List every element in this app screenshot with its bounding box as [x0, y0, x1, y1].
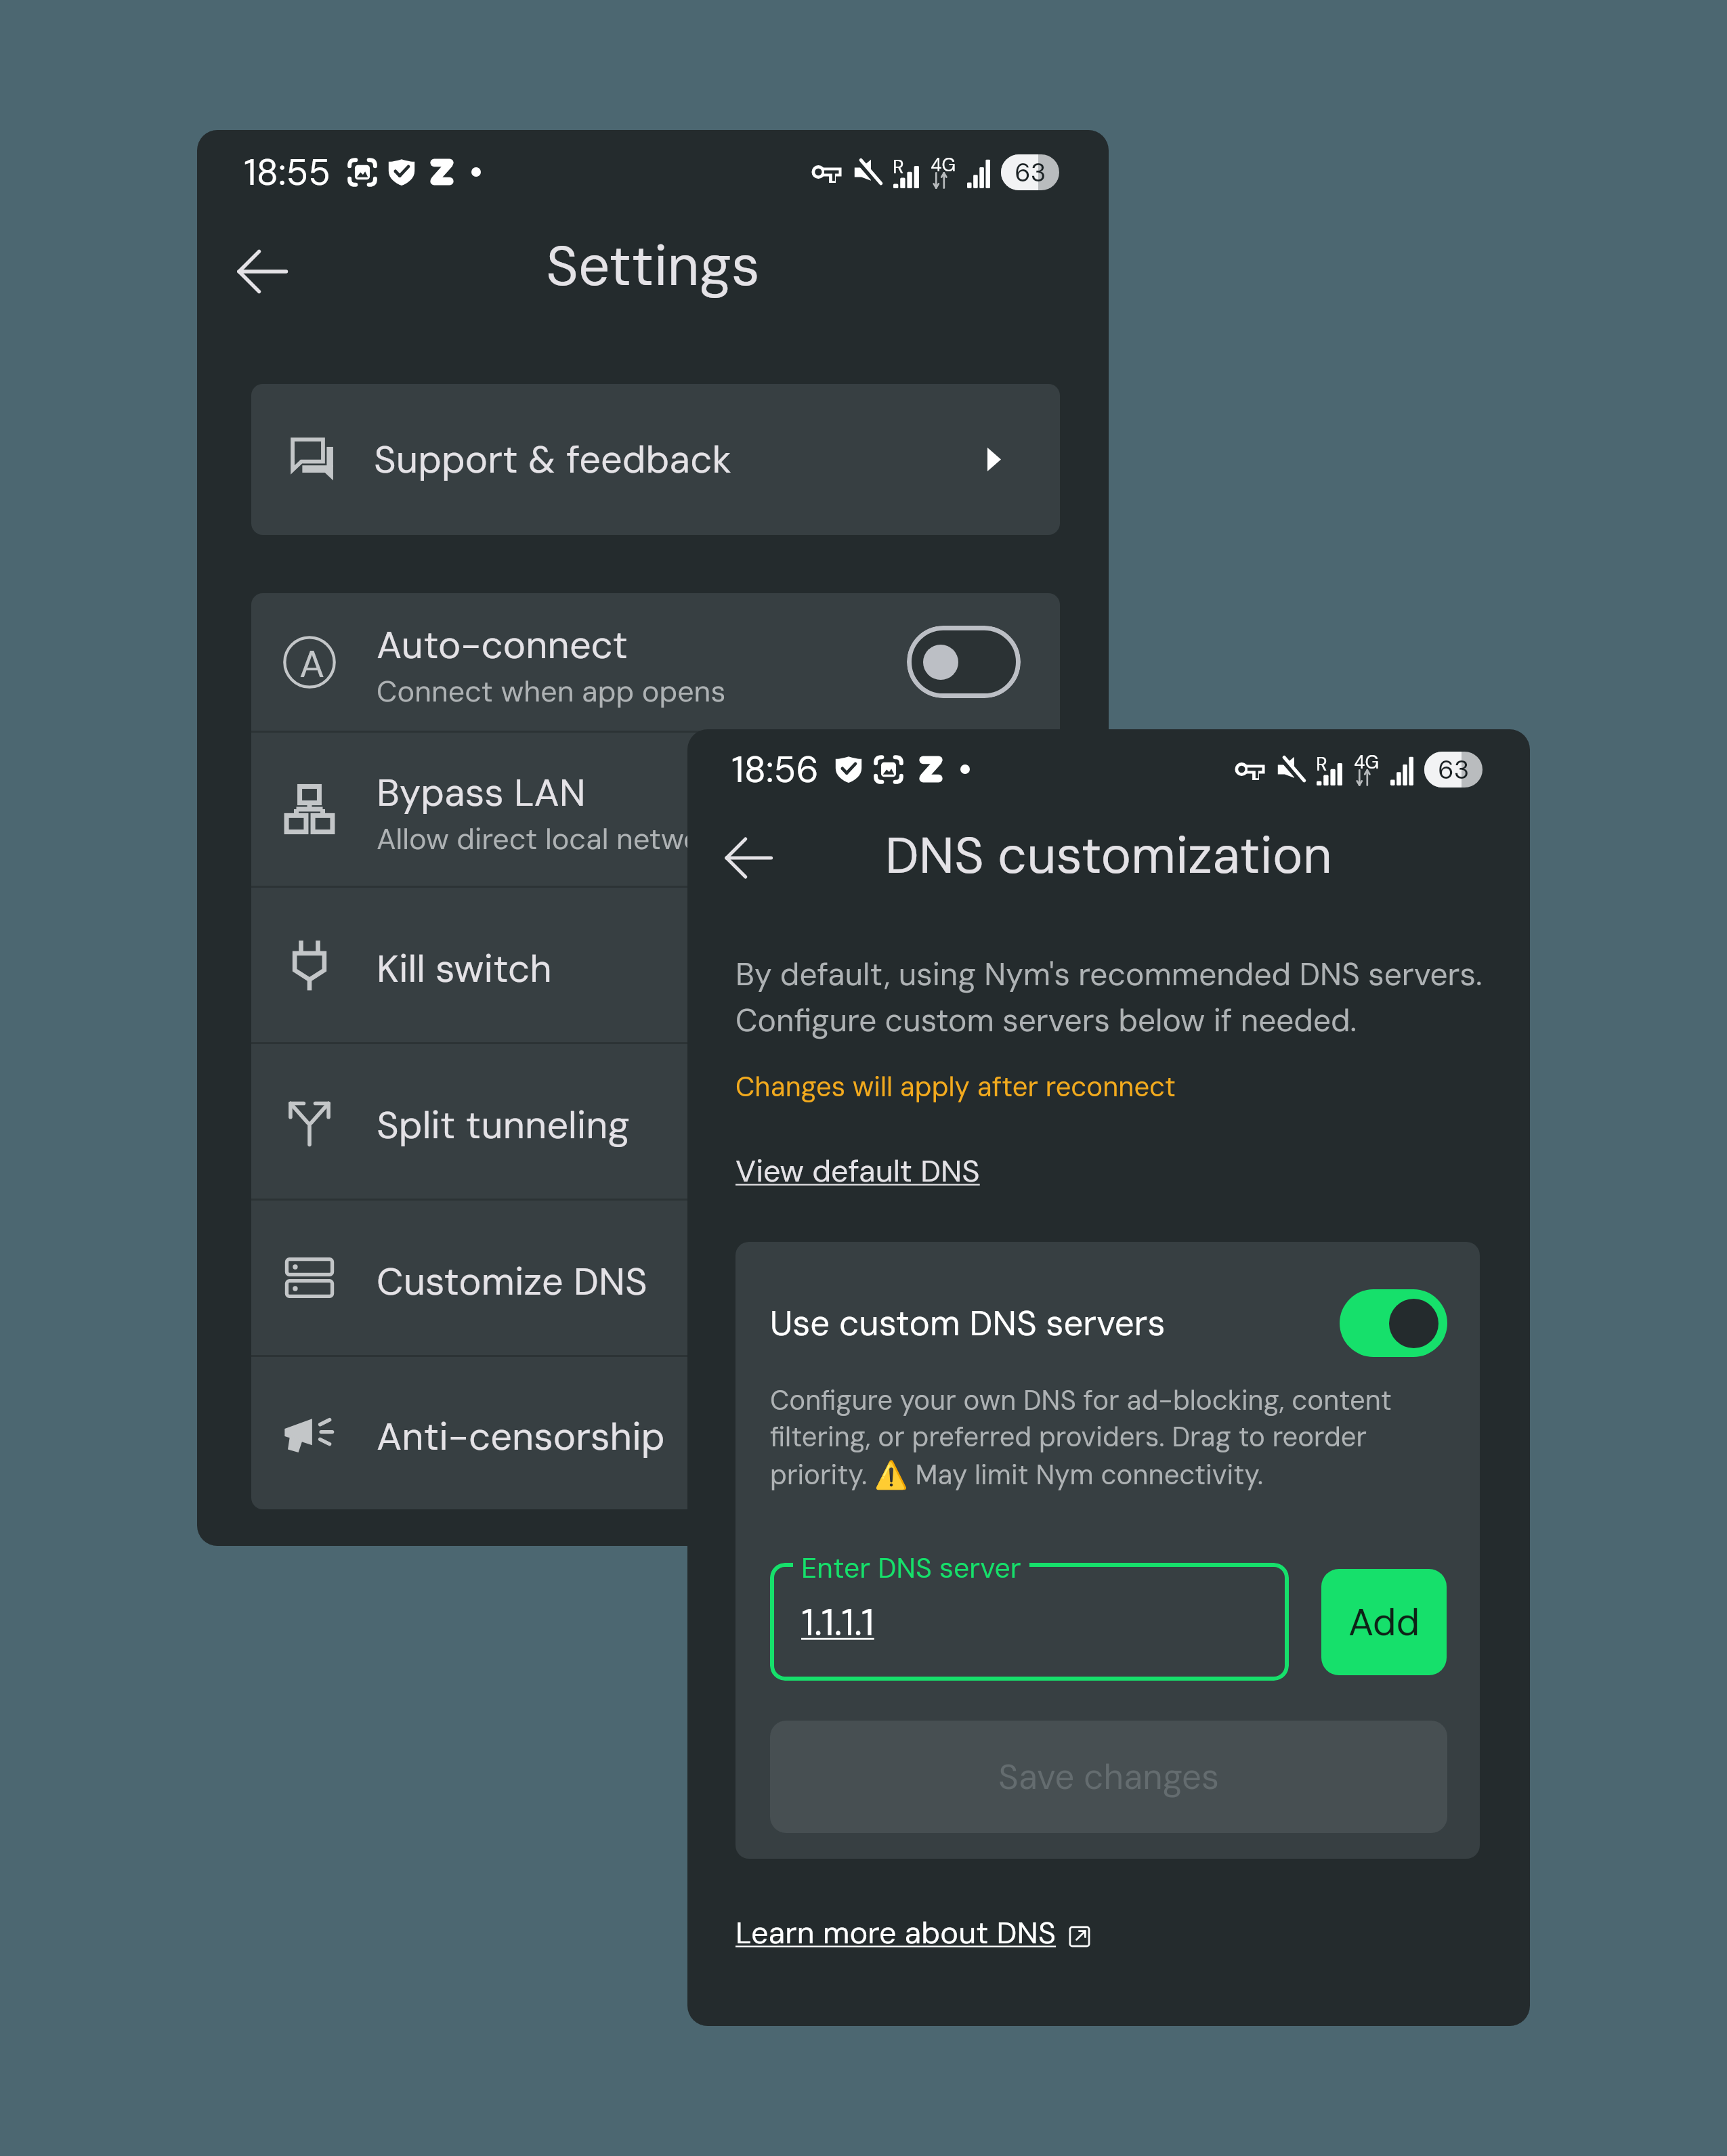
button[interactable]: Back: [706, 816, 790, 900]
button[interactable]: [907, 626, 1021, 698]
button[interactable]: Learn more about DNS: [735, 1913, 1090, 1953]
staticText: DNS customization: [885, 823, 1333, 889]
staticText: Split tunneling: [377, 1100, 630, 1150]
staticText: Learn more about DNS: [735, 1913, 1057, 1953]
staticText: 18:56: [731, 746, 819, 793]
staticText: Changes will apply after reconnect: [735, 1069, 1176, 1104]
staticText: 1.1.1.1: [801, 1597, 874, 1647]
staticText: Settings: [546, 230, 760, 303]
staticText: A: [299, 639, 325, 689]
staticText: Add: [1348, 1597, 1420, 1647]
button[interactable]: [770, 1563, 1289, 1681]
button[interactable]: Use custom DNS servers: [770, 1289, 1447, 1357]
button[interactable]: Support & feedback: [251, 384, 1060, 535]
staticText: Support & feedback: [374, 435, 731, 484]
staticText: Kill switch: [377, 944, 552, 993]
staticText: Customize DNS: [377, 1257, 647, 1306]
staticText: 18:55: [244, 148, 331, 196]
button[interactable]: Add: [1321, 1569, 1447, 1675]
button[interactable]: Kill switch: [251, 888, 1060, 1042]
button[interactable]: View default DNS: [735, 1151, 980, 1191]
button[interactable]: Customize DNS: [251, 1201, 1060, 1355]
staticText: Enter DNS server: [801, 1550, 1021, 1586]
staticText: Connect when app opens: [377, 672, 726, 710]
staticText: 4G+: [1354, 750, 1378, 774]
staticText: Auto-connect: [377, 620, 628, 670]
button[interactable]: Anti-censorship: [251, 1357, 1060, 1509]
button[interactable]: A: [251, 593, 1060, 731]
staticText: Bypass LAN: [377, 768, 586, 817]
button[interactable]: Back: [219, 228, 305, 315]
staticText: Configure your own DNS for ad-blocking, …: [770, 1383, 1447, 1492]
staticText: R: [1316, 752, 1327, 776]
staticText: Use custom DNS servers: [770, 1301, 1340, 1345]
button[interactable]: Bypass LAN: [251, 733, 1060, 886]
staticText: Anti-censorship: [377, 1412, 665, 1461]
staticText: By default, using Nym's recommended DNS …: [735, 954, 1483, 1041]
button[interactable]: [1340, 1289, 1447, 1357]
staticText: 4G: [931, 153, 955, 177]
staticText: Save changes: [998, 1754, 1219, 1799]
button[interactable]: Split tunneling: [251, 1044, 1060, 1199]
staticText: Allow direct local network access: [377, 820, 831, 858]
staticText: 63: [1438, 753, 1470, 786]
staticText: 63: [1015, 156, 1046, 189]
button[interactable]: Save changes: [770, 1721, 1447, 1833]
staticText: R: [893, 154, 904, 179]
